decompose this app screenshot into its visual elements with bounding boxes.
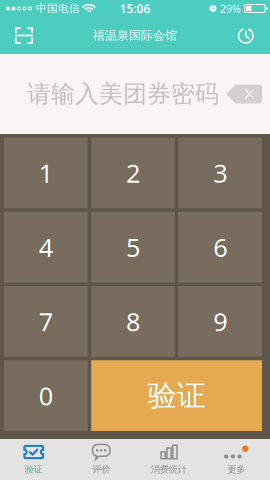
- staticText: 6: [213, 230, 227, 264]
- button[interactable]: 删除: [226, 84, 270, 103]
- staticText: 更多: [227, 463, 245, 475]
- staticText: 7: [39, 305, 53, 338]
- staticText: 验证: [25, 463, 43, 475]
- button[interactable]: 8: [91, 286, 175, 357]
- button[interactable]: 1: [4, 137, 88, 208]
- button[interactable]: 9: [178, 286, 262, 357]
- button[interactable]: 4: [4, 212, 88, 283]
- button[interactable]: 更多: [202, 439, 270, 480]
- button[interactable]: 0: [4, 360, 88, 431]
- staticText: 9: [213, 305, 227, 338]
- staticText: 评价: [92, 463, 110, 475]
- staticText: 4: [39, 230, 53, 264]
- button[interactable]: 3: [178, 137, 262, 208]
- button[interactable]: 5: [91, 212, 175, 283]
- staticText: 3: [213, 156, 227, 190]
- button[interactable]: 历史记录: [222, 17, 270, 54]
- button[interactable]: 验证: [91, 360, 262, 431]
- button[interactable]: 评价: [67, 439, 135, 480]
- button[interactable]: 2: [91, 137, 175, 208]
- button[interactable]: 7: [4, 286, 88, 357]
- staticText: 验证: [148, 378, 206, 414]
- button[interactable]: 验证: [0, 439, 67, 480]
- staticText: 中国电信: [36, 2, 80, 15]
- staticText: 2: [126, 156, 140, 190]
- staticText: 消费统计: [151, 463, 187, 475]
- staticText: 1: [39, 156, 53, 190]
- staticText: 15:06: [119, 0, 150, 16]
- button[interactable]: 6: [178, 212, 262, 283]
- button[interactable]: 消费统计: [135, 439, 202, 480]
- staticText: 请输入美团券密码: [27, 79, 219, 109]
- staticText: 5: [126, 230, 140, 264]
- staticText: 8: [126, 305, 140, 338]
- staticText: 0: [39, 379, 53, 412]
- staticText: 29%: [220, 1, 241, 16]
- staticText: 禧温泉国际会馆: [93, 28, 177, 43]
- button[interactable]: 扫码: [0, 17, 48, 54]
